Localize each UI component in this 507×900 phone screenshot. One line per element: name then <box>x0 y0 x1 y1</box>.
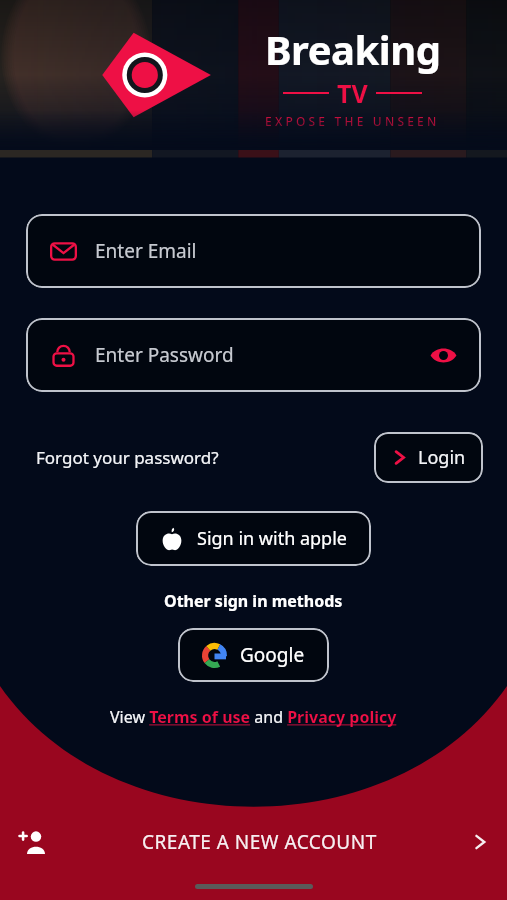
staticText: Google <box>240 642 305 668</box>
staticText: View Terms of use and Privacy policy <box>110 706 397 728</box>
staticText: Enter Password <box>95 342 234 368</box>
button[interactable]: Enter Email <box>26 214 481 288</box>
staticText: CREATE A NEW ACCOUNT <box>142 829 377 855</box>
other: Create a new account <box>18 827 48 857</box>
staticText: Other sign in methods <box>164 590 343 612</box>
staticText: Enter Email <box>95 238 197 264</box>
staticText: Breaking <box>265 22 441 76</box>
button[interactable]: Sign in with apple <box>136 511 371 566</box>
button[interactable]: Login <box>374 432 483 483</box>
button[interactable]: Google <box>178 628 329 682</box>
button[interactable]: View Terms of use and Privacy policy <box>0 706 507 728</box>
button[interactable]: Enter Password <box>26 318 481 392</box>
staticText: EXPOSE THE UNSEEN <box>265 113 440 129</box>
button[interactable]: Create a new account <box>0 812 507 872</box>
staticText: TV <box>337 76 368 110</box>
staticText: Login <box>418 445 466 470</box>
button[interactable]: Forgot your password? <box>36 438 219 477</box>
staticText: Forgot your password? <box>36 446 219 469</box>
button[interactable]: Show password <box>430 342 457 369</box>
staticText: Sign in with apple <box>197 526 347 551</box>
